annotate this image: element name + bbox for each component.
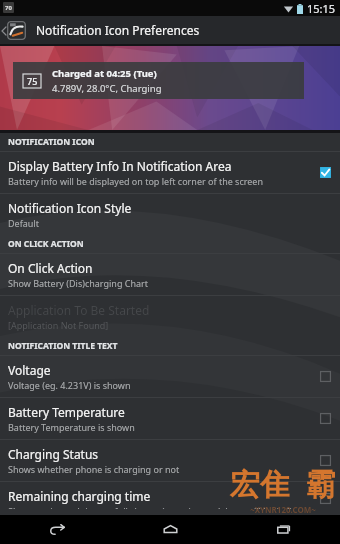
button[interactable]: Charging Status — [0, 440, 340, 481]
staticText: Notification Icon Preferences — [36, 22, 200, 38]
staticText: 4.789V, 28.0°C, Charging — [52, 82, 162, 95]
staticText: NOTIFICATION ICON — [8, 136, 95, 148]
staticText: ~XYNR120.COM~ — [250, 504, 316, 515]
button[interactable]: Voltage — [0, 356, 340, 397]
staticText: Application To Be Started — [8, 302, 150, 318]
button[interactable]: Back — [0, 515, 114, 544]
staticText: Default — [8, 217, 39, 229]
staticText: NOTIFICATION TITLE TEXT — [8, 340, 118, 352]
button[interactable]: Unchecked — [319, 492, 332, 505]
staticText: ON CLICK ACTION — [8, 238, 84, 250]
button[interactable]: Notification Icon Style — [0, 194, 340, 235]
staticText: 75 — [27, 75, 38, 87]
staticText: Charged at 04:25 (Tue) — [52, 67, 157, 80]
button[interactable]: Recent apps — [227, 515, 340, 544]
button[interactable]: Unchecked — [319, 412, 332, 425]
staticText: 70 — [5, 4, 12, 12]
button[interactable]: Unchecked — [319, 454, 332, 467]
staticText: Battery Temperature is shown — [8, 421, 135, 433]
staticText: Shows estimated time to full charge (exp… — [8, 505, 311, 509]
staticText: Display Battery Info In Notification Are… — [8, 158, 232, 174]
button[interactable]: Display Battery Info In Notification Are… — [0, 152, 340, 193]
staticText: Show Battery (Dis)charging Chart — [8, 277, 149, 289]
button[interactable]: Remaining charging time — [0, 482, 340, 515]
button[interactable]: Home — [114, 515, 227, 544]
staticText: [Application Not Found] — [8, 319, 109, 331]
button[interactable]: Application To Be Started — [0, 296, 340, 337]
staticText: Charging Status — [8, 446, 99, 462]
button[interactable]: Navigate up — [0, 16, 28, 44]
staticText: On Click Action — [8, 260, 93, 276]
staticText: Shows whether phone is charging or not — [8, 463, 180, 475]
staticText: Remaining charging time — [8, 488, 151, 504]
staticText: Voltage (eg. 4.231V) is shown — [8, 379, 131, 391]
button[interactable]: On Click Action — [0, 254, 340, 295]
staticText: Notification Icon Style — [8, 200, 132, 216]
staticText: 15:15 — [307, 1, 336, 16]
staticText: 宏隹 霸 — [230, 463, 336, 504]
staticText: Battery Temperature — [8, 404, 125, 420]
staticText: Battery info will be displayed on top le… — [8, 175, 263, 187]
staticText: Voltage — [8, 362, 51, 378]
button[interactable]: Unchecked — [319, 370, 332, 383]
button[interactable]: Checked — [319, 166, 332, 179]
button[interactable]: Battery Temperature — [0, 398, 340, 439]
